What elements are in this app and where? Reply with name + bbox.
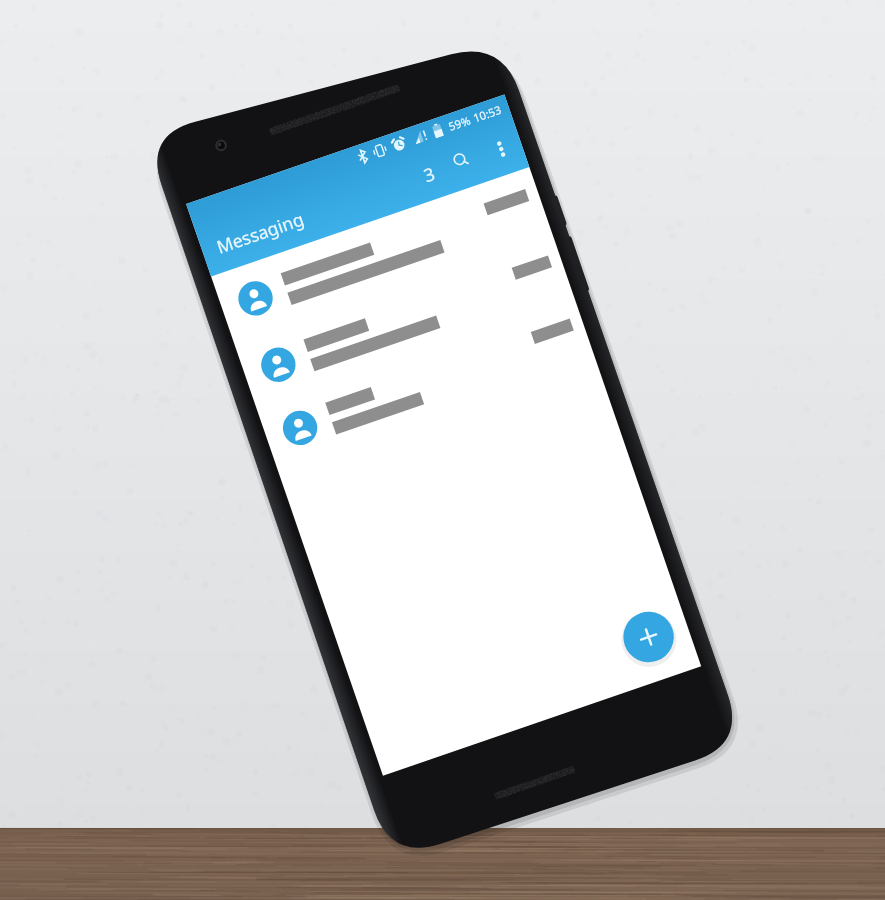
button[interactable] <box>0 0 885 900</box>
